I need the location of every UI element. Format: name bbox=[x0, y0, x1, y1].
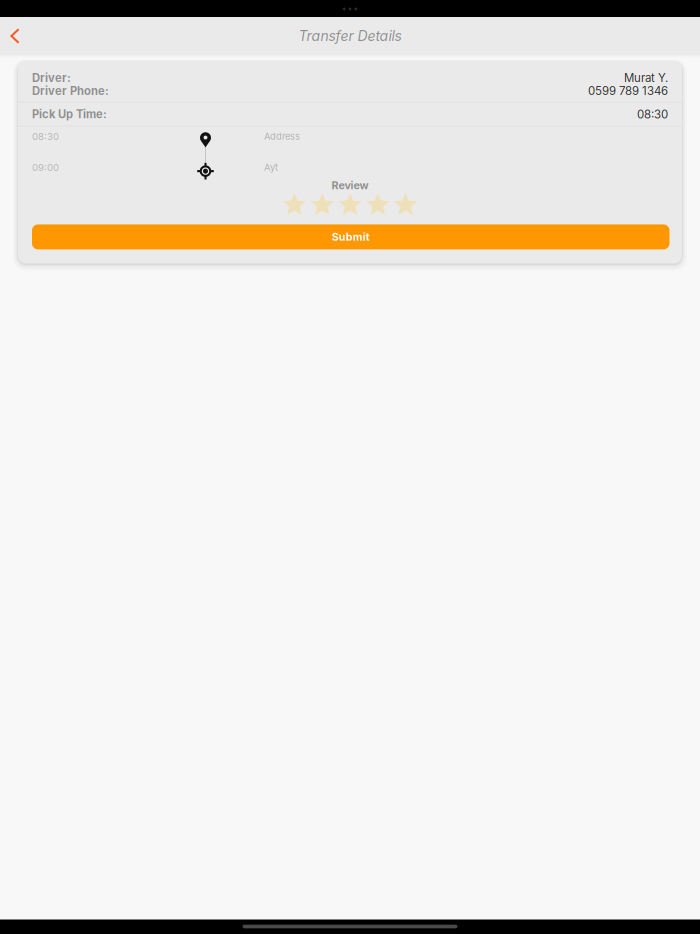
staticText: 08:30 bbox=[32, 131, 59, 142]
staticText: Ayt bbox=[264, 162, 278, 173]
staticText: Murat Y. bbox=[624, 71, 668, 85]
staticText: 08:30 bbox=[637, 107, 668, 121]
staticText: Address bbox=[264, 131, 300, 142]
staticText: 09:00 bbox=[32, 162, 59, 173]
staticText: 0599 789 1346 bbox=[588, 84, 668, 98]
staticText: Transfer Details bbox=[298, 27, 401, 44]
staticText: Pick Up Time: bbox=[32, 107, 107, 121]
staticText: Submit bbox=[332, 230, 370, 243]
button[interactable]: Back bbox=[0, 17, 32, 55]
button[interactable]: Submit bbox=[32, 224, 669, 249]
staticText: Driver: bbox=[32, 71, 71, 85]
staticText: Driver Phone: bbox=[32, 84, 109, 98]
staticText: Review bbox=[331, 179, 368, 192]
